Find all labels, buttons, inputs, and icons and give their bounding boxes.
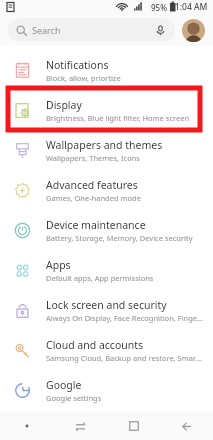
button[interactable]: Cloud and accounts [0, 330, 213, 370]
staticText: Always On Display, Face Recognition, Fin… [46, 313, 203, 323]
staticText: 11:04 AM [170, 1, 208, 13]
staticText: Games, One-handed mode [46, 193, 141, 203]
button[interactable]: Recents [54, 412, 107, 440]
button[interactable]: Display [0, 90, 213, 130]
staticText: Advanced features [46, 178, 138, 192]
staticText: Block, allow, priortize [46, 73, 121, 83]
staticText: Display [46, 98, 82, 112]
button[interactable]: Back [160, 412, 213, 440]
button[interactable]: Notifications [0, 50, 213, 90]
staticText: Device maintenance [46, 218, 146, 232]
button[interactable]: Advanced features [0, 170, 213, 210]
staticText: Google settings [46, 393, 102, 403]
button[interactable]: Search [8, 18, 175, 42]
staticText: Search [32, 24, 61, 36]
staticText: Brightness, Blue light filter, Home scre… [46, 113, 190, 123]
button[interactable]: Home [107, 412, 160, 440]
staticText: 95% [151, 2, 167, 13]
button[interactable]: Lock screen and security [0, 290, 213, 330]
staticText: Samsung Cloud, Backup and restore, Smart… [46, 353, 203, 363]
staticText: Notifications [46, 58, 109, 72]
button[interactable]: Apps [0, 250, 213, 290]
button[interactable]: Wallpapers and themes [0, 130, 213, 170]
button[interactable]: Account [182, 19, 205, 42]
staticText: Wallpapers, Themes, Icons [46, 153, 140, 163]
staticText: Cloud and accounts [46, 338, 144, 352]
staticText: Apps [46, 258, 71, 272]
button[interactable]: Menu dot [0, 412, 54, 440]
staticText: Battery, Storage, Memory, Device securit… [46, 233, 193, 243]
staticText: Google [46, 378, 82, 392]
staticText: Lock screen and security [46, 298, 167, 312]
button[interactable]: Voice search [154, 24, 167, 37]
staticText: Wallpapers and themes [46, 138, 163, 152]
button[interactable]: Google [0, 370, 213, 410]
staticText: Default apps, App permissions [46, 273, 154, 283]
button[interactable]: Device maintenance [0, 210, 213, 250]
